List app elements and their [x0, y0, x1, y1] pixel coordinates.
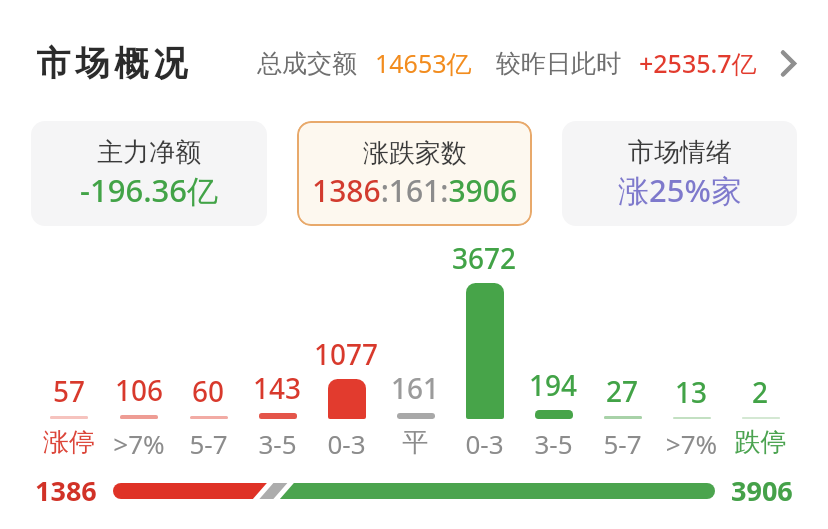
button[interactable]: 市场情绪 [562, 121, 797, 226]
staticText: 涨停 [34, 426, 104, 459]
staticText: 涨25%家 [618, 169, 742, 211]
staticText: 0-3 [312, 426, 381, 461]
staticText: 较昨日此时 [496, 48, 621, 79]
staticText: 总成交额 [257, 48, 357, 79]
staticText: 市场概况 [34, 42, 190, 85]
staticText: 2 [752, 373, 769, 411]
staticText: 194 [529, 366, 578, 404]
staticText: 主力净额 [97, 136, 201, 169]
staticText: >7% [657, 426, 726, 461]
staticText: 5-7 [588, 426, 657, 461]
staticText: 13 [675, 373, 708, 411]
button[interactable]: 市场概况 [34, 40, 796, 86]
staticText: 3-5 [243, 426, 312, 461]
staticText: >7% [104, 426, 174, 461]
staticText: 1386 [35, 472, 97, 509]
staticText: 143 [253, 369, 302, 407]
staticText: 3672 [452, 239, 517, 277]
button[interactable]: 主力净额 [31, 121, 267, 226]
staticText: 57 [53, 372, 86, 410]
staticText: 1386:161:3906 [312, 170, 518, 211]
staticText: 1077 [314, 335, 379, 373]
staticText: 市场情绪 [628, 136, 732, 169]
staticText: +2535.7亿 [639, 46, 757, 80]
staticText: 3906 [731, 472, 793, 509]
staticText: 14653亿 [375, 46, 472, 80]
staticText: 60 [192, 372, 225, 410]
staticText: 161 [391, 369, 440, 407]
staticText: 跌停 [726, 426, 795, 459]
staticText: 涨跌家数 [363, 137, 467, 170]
staticText: 106 [115, 371, 164, 409]
staticText: 3-5 [519, 426, 588, 461]
staticText: 0-3 [450, 426, 519, 461]
staticText: -196.36亿 [80, 169, 219, 211]
staticText: 5-7 [174, 426, 243, 461]
button[interactable]: 涨跌家数 [297, 121, 532, 226]
staticText: 平 [381, 426, 450, 459]
staticText: 27 [606, 372, 639, 410]
